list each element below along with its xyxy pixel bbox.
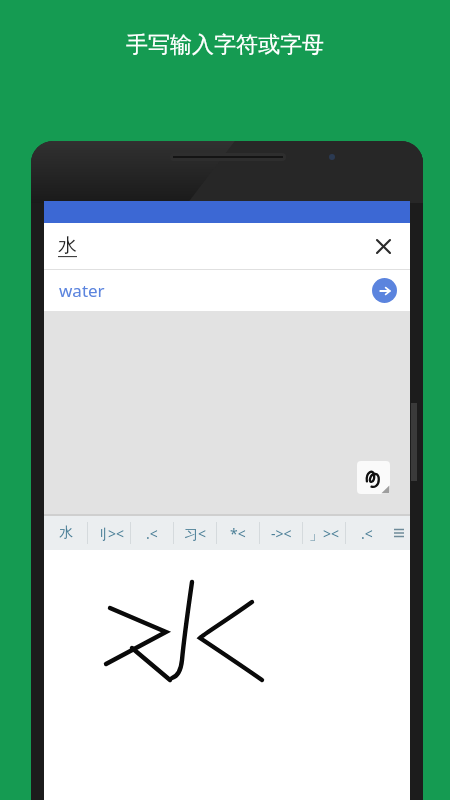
staticText: 」>< [309,524,340,543]
button[interactable]: Handwriting input [357,461,390,494]
staticText: water [59,279,105,302]
button[interactable]: *< [217,516,259,550]
button[interactable]: Clear [370,233,396,259]
button[interactable]: water [44,270,410,311]
button[interactable]: More options [388,516,410,550]
staticText: *< [230,524,246,543]
staticText: 习< [184,524,207,543]
staticText: .< [361,524,373,543]
button[interactable]: 」>< [303,516,345,550]
button[interactable]: Handwriting area [44,550,410,800]
button[interactable]: 习< [174,516,216,550]
staticText: 水 [58,234,77,258]
button[interactable]: 水 [44,516,87,550]
staticText: .< [146,524,158,543]
button[interactable]: Search water [372,278,397,303]
staticText: ->< [271,524,292,543]
staticText: 刂>< [94,524,125,543]
button[interactable]: 水 [44,223,410,269]
button[interactable]: .< [131,516,173,550]
staticText: 水 [59,524,73,542]
button[interactable]: 刂>< [88,516,130,550]
button[interactable]: .< [346,516,388,550]
staticText: 手写输入字符或字母 [126,31,324,59]
button[interactable]: ->< [260,516,302,550]
